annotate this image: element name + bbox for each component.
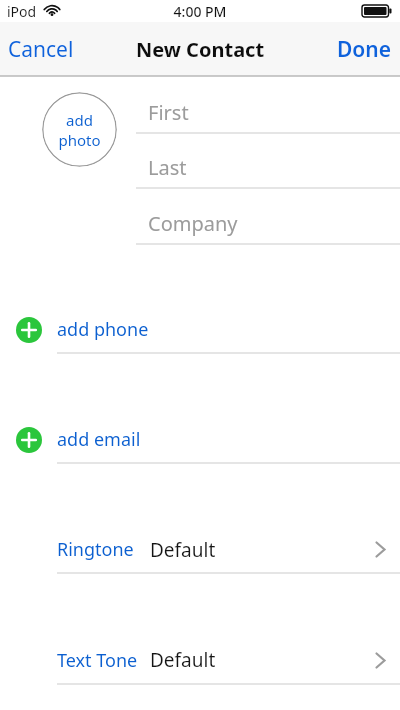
button[interactable]: First [136, 92, 400, 133]
button[interactable]: Ringtone [0, 526, 400, 573]
staticText: add email [57, 427, 141, 452]
staticText: First [148, 99, 189, 126]
button[interactable]: Cancel [0, 22, 66, 76]
staticText: Last [148, 154, 187, 181]
button[interactable]: Text Tone [0, 636, 400, 684]
button[interactable]: Add phone [0, 306, 400, 353]
staticText: photo [58, 130, 101, 150]
staticText: Company [148, 210, 238, 237]
button[interactable]: Last [136, 147, 400, 188]
staticText: Default [150, 537, 216, 563]
staticText: add phone [57, 317, 149, 342]
staticText: iPod [7, 2, 37, 21]
staticText: Cancel [8, 35, 74, 64]
staticText: New Contact [136, 36, 265, 63]
staticText: Text Tone [57, 648, 138, 673]
staticText: Done [337, 35, 392, 64]
button[interactable]: Company [136, 202, 400, 244]
staticText: Ringtone [57, 537, 134, 562]
staticText: Default [150, 647, 216, 673]
button[interactable]: Done [345, 22, 400, 76]
button[interactable]: Add email [0, 416, 400, 463]
button[interactable]: Add photo [42, 92, 117, 167]
staticText: add [66, 110, 93, 130]
staticText: 4:00 PM [0, 2, 400, 21]
